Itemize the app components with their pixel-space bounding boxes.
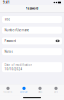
staticText: Notes — [4, 50, 12, 53]
staticText: Settings — [37, 91, 42, 93]
button[interactable]: Number/Username — [2, 27, 62, 34]
staticText: Password — [25, 7, 38, 10]
staticText: Password — [4, 39, 16, 43]
staticText: More — [54, 91, 58, 93]
staticText: Title — [4, 18, 10, 21]
button[interactable]: Password — [2, 37, 62, 44]
button[interactable]: Date of modification — [2, 62, 62, 72]
staticText: Generator — [20, 91, 28, 93]
staticText: Passwords — [3, 91, 12, 93]
button[interactable]: Passwords — [0, 84, 16, 95]
staticText: Date of modification — [4, 63, 32, 67]
button[interactable]: Settings — [32, 84, 48, 95]
button[interactable]: Notes — [2, 48, 62, 55]
staticText: 9:41 — [3, 1, 10, 4]
button[interactable]: Title — [2, 16, 62, 23]
staticText: 10/10/2024 — [4, 67, 22, 71]
button[interactable]: Generator — [16, 84, 32, 95]
button[interactable]: More — [48, 84, 64, 95]
staticText: Number/Username — [4, 28, 29, 32]
